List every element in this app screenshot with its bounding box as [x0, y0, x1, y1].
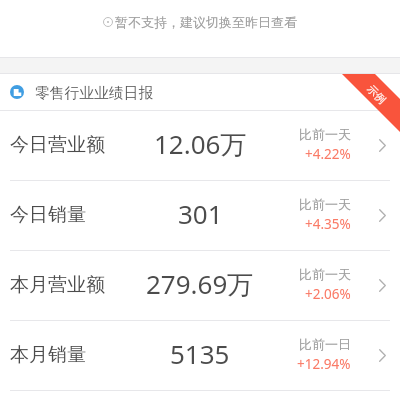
button[interactable]: 查看详情 [364, 251, 400, 320]
staticText: 今日销量 [10, 203, 86, 227]
staticText: 比前一日 [299, 336, 351, 352]
staticText: 279.69万 [146, 266, 254, 302]
staticText: 示例 [364, 82, 388, 106]
button[interactable]: 今日营业额 [0, 111, 400, 180]
staticText: +4.35% [305, 215, 351, 233]
staticText: 本月销量 [10, 343, 86, 367]
staticText: 12.06万 [154, 126, 247, 162]
staticText: 零售行业业绩日报 [35, 84, 154, 103]
staticText: +4.22% [305, 145, 351, 163]
staticText: 5135 [170, 336, 230, 371]
staticText: 暂不支持，建议切换至昨日查看 [115, 14, 297, 30]
staticText: 301 [178, 196, 223, 231]
button[interactable]: 零售行业业绩日报 [0, 74, 400, 110]
button[interactable]: 本月销量 [0, 321, 400, 390]
staticText: 比前一天 [299, 196, 351, 212]
staticText: 比前一天 [299, 126, 351, 142]
button[interactable]: 本月营业额 [0, 251, 400, 320]
button[interactable]: 查看详情 [364, 181, 400, 250]
button[interactable]: 查看详情 [364, 111, 400, 180]
staticText: 今日营业额 [10, 133, 105, 157]
button[interactable]: 查看详情 [364, 321, 400, 390]
staticText: +2.06% [305, 285, 351, 303]
staticText: 比前一天 [299, 266, 351, 282]
staticText: +12.94% [297, 355, 351, 373]
button[interactable]: 今日销量 [0, 181, 400, 250]
staticText: 本月营业额 [10, 273, 105, 297]
